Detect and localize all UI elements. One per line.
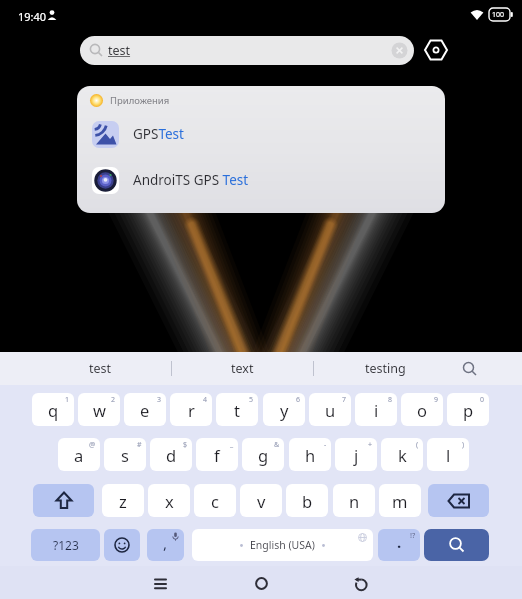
staticText: 2 xyxy=(111,395,116,405)
button[interactable]: z xyxy=(102,484,144,517)
staticText: 7 xyxy=(342,395,347,405)
button[interactable]: j xyxy=(335,438,377,471)
staticText: @ xyxy=(89,440,96,450)
button[interactable] xyxy=(422,36,450,64)
staticText: s xyxy=(121,444,129,466)
button[interactable]: a xyxy=(58,438,100,471)
staticText: , xyxy=(163,533,168,553)
staticText: j xyxy=(354,444,359,466)
button[interactable]: . xyxy=(378,529,420,561)
button[interactable]: test xyxy=(80,36,414,65)
button[interactable]: u xyxy=(309,393,351,426)
staticText: 1 xyxy=(65,395,70,405)
staticText: & xyxy=(274,440,280,450)
staticText: c xyxy=(211,490,219,512)
staticText: x xyxy=(165,490,174,512)
button[interactable] xyxy=(231,568,291,599)
staticText: ) xyxy=(462,440,465,450)
staticText: ( xyxy=(416,440,419,450)
button[interactable]: v xyxy=(240,484,282,517)
button[interactable]: q xyxy=(32,393,74,426)
button[interactable] xyxy=(424,529,489,561)
staticText: 9 xyxy=(434,395,439,405)
staticText: v xyxy=(257,490,266,512)
button[interactable]: test xyxy=(60,352,140,385)
staticText: AndroiTS GPS Test xyxy=(133,171,249,189)
button[interactable]: y xyxy=(263,393,305,426)
staticText: h xyxy=(305,444,316,466)
staticText: $ xyxy=(183,440,188,450)
button[interactable]: t xyxy=(216,393,258,426)
button[interactable]: ?123 xyxy=(31,529,100,561)
button[interactable]: AndroiTS GPS Test xyxy=(92,166,249,194)
staticText: + xyxy=(368,440,373,450)
button[interactable]: g xyxy=(242,438,284,471)
staticText: GPSTest xyxy=(133,125,184,143)
button[interactable] xyxy=(331,568,391,599)
staticText: test xyxy=(108,42,131,59)
button[interactable]: f xyxy=(196,438,238,471)
staticText: English (USA) xyxy=(250,538,315,552)
button[interactable]: English (USA) xyxy=(192,529,373,561)
staticText: text xyxy=(231,360,254,377)
staticText: Приложения xyxy=(110,94,170,107)
staticText: w xyxy=(93,399,106,421)
button[interactable]: s xyxy=(104,438,146,471)
staticText: y xyxy=(280,399,289,421)
button[interactable]: e xyxy=(124,393,166,426)
staticText: t xyxy=(234,399,240,421)
staticText: _ xyxy=(230,440,234,450)
staticText: 6 xyxy=(296,395,301,405)
button[interactable] xyxy=(104,529,140,561)
button[interactable] xyxy=(428,484,489,517)
staticText: e xyxy=(140,399,150,421)
button[interactable]: h xyxy=(289,438,331,471)
staticText: 8 xyxy=(388,395,393,405)
staticText: r xyxy=(188,399,195,421)
button[interactable]: m xyxy=(379,484,421,517)
staticText: l xyxy=(446,444,451,466)
button[interactable] xyxy=(33,484,94,517)
button[interactable]: d xyxy=(150,438,192,471)
staticText: o xyxy=(417,399,427,421)
staticText: 19:40 xyxy=(18,9,47,24)
button[interactable]: GPSTest xyxy=(92,120,184,148)
staticText: # xyxy=(137,440,142,450)
button[interactable]: testing xyxy=(345,352,425,385)
staticText: i xyxy=(374,399,379,421)
staticText: 3 xyxy=(157,395,162,405)
staticText: d xyxy=(166,444,177,466)
button[interactable]: w xyxy=(78,393,120,426)
button[interactable]: i xyxy=(355,393,397,426)
staticText: 4 xyxy=(203,395,208,405)
staticText: 5 xyxy=(249,395,254,405)
staticText: . xyxy=(397,532,402,552)
staticText: f xyxy=(214,444,220,466)
button[interactable]: p xyxy=(447,393,489,426)
staticText: k xyxy=(398,444,407,466)
button[interactable] xyxy=(450,352,490,385)
staticText: test xyxy=(89,360,112,377)
button[interactable]: l xyxy=(427,438,469,471)
staticText: ?123 xyxy=(53,537,79,553)
staticText: a xyxy=(74,444,84,466)
staticText: - xyxy=(324,440,327,450)
staticText: u xyxy=(325,399,336,421)
staticText: g xyxy=(258,444,269,466)
staticText: testing xyxy=(365,360,406,377)
button[interactable] xyxy=(130,568,190,599)
button[interactable]: o xyxy=(401,393,443,426)
button[interactable]: c xyxy=(194,484,236,517)
button[interactable]: n xyxy=(333,484,375,517)
button[interactable]: r xyxy=(170,393,212,426)
staticText: 100 xyxy=(492,10,505,20)
staticText: b xyxy=(302,490,313,512)
button[interactable]: k xyxy=(381,438,423,471)
staticText: !? xyxy=(410,530,416,540)
button[interactable]: , xyxy=(147,529,184,561)
button[interactable]: text xyxy=(202,352,282,385)
button[interactable]: b xyxy=(286,484,328,517)
button[interactable]: x xyxy=(148,484,190,517)
staticText: q xyxy=(48,399,59,421)
staticText: p xyxy=(463,399,474,421)
